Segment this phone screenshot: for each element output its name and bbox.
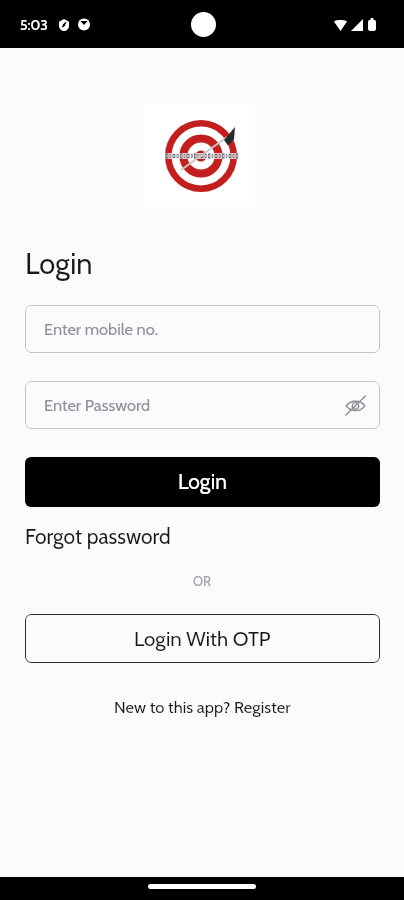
staticText: OR [0,573,404,589]
button[interactable]: Show password [345,395,366,416]
staticText: Enter mobile no. [44,319,159,339]
button[interactable]: Login With OTP [25,614,380,663]
button[interactable]: New to this app? Register [114,697,291,717]
button[interactable]: Enter mobile no. [25,305,380,353]
button[interactable]: Login [25,457,380,507]
staticText: New to this app? Register [114,697,291,717]
staticText: Login [25,246,93,281]
staticText: Login [178,469,227,495]
staticText: Forgot password [25,524,171,550]
button[interactable]: Enter Password [25,381,380,429]
staticText: 5:03 [20,16,48,33]
staticText: Enter Password [44,395,151,415]
staticText: Login With OTP [134,626,271,651]
button[interactable]: Forgot password [25,524,171,550]
